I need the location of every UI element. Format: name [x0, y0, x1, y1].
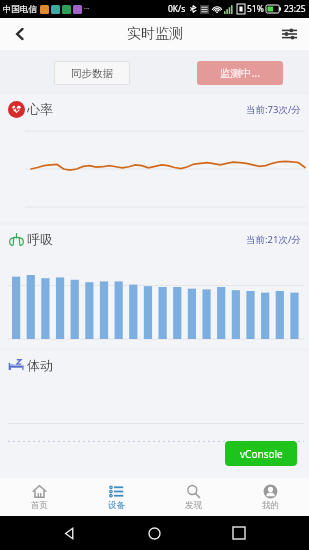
staticText: 0K/s [168, 3, 186, 15]
staticText: 当前:73次/分 [246, 103, 301, 116]
button[interactable]: 首页 [0, 478, 78, 516]
staticText: 呼吸 [27, 231, 53, 247]
staticText: 实时监测 [127, 25, 183, 43]
staticText: 同步数据 [71, 67, 113, 80]
staticText: vConsole [240, 447, 283, 461]
staticText: 当前:21次/分 [246, 233, 301, 246]
button[interactable]: 设备 [78, 478, 155, 516]
button[interactable]: Settings [269, 18, 309, 50]
button[interactable]: vConsole [225, 441, 297, 466]
button[interactable]: 监测中... [197, 61, 283, 85]
button[interactable]: Back [54, 518, 84, 548]
staticText: 51% [247, 3, 264, 15]
button[interactable]: 我的 [232, 478, 309, 516]
staticText: ··· [84, 4, 90, 14]
button[interactable]: Home [139, 518, 169, 548]
button[interactable]: 发现 [155, 478, 232, 516]
staticText: 监测中... [220, 66, 260, 80]
staticText: 发现 [185, 500, 202, 511]
button[interactable]: Recents [224, 518, 254, 548]
staticText: 23:25 [284, 3, 306, 15]
staticText: 首页 [31, 500, 48, 511]
staticText: 体动 [27, 357, 53, 373]
staticText: 中国电信 [3, 4, 37, 15]
button[interactable]: Back [0, 18, 40, 50]
staticText: 心率 [27, 101, 53, 117]
staticText: 设备 [108, 500, 125, 511]
button[interactable]: 同步数据 [54, 61, 130, 85]
staticText: 我的 [262, 500, 279, 511]
